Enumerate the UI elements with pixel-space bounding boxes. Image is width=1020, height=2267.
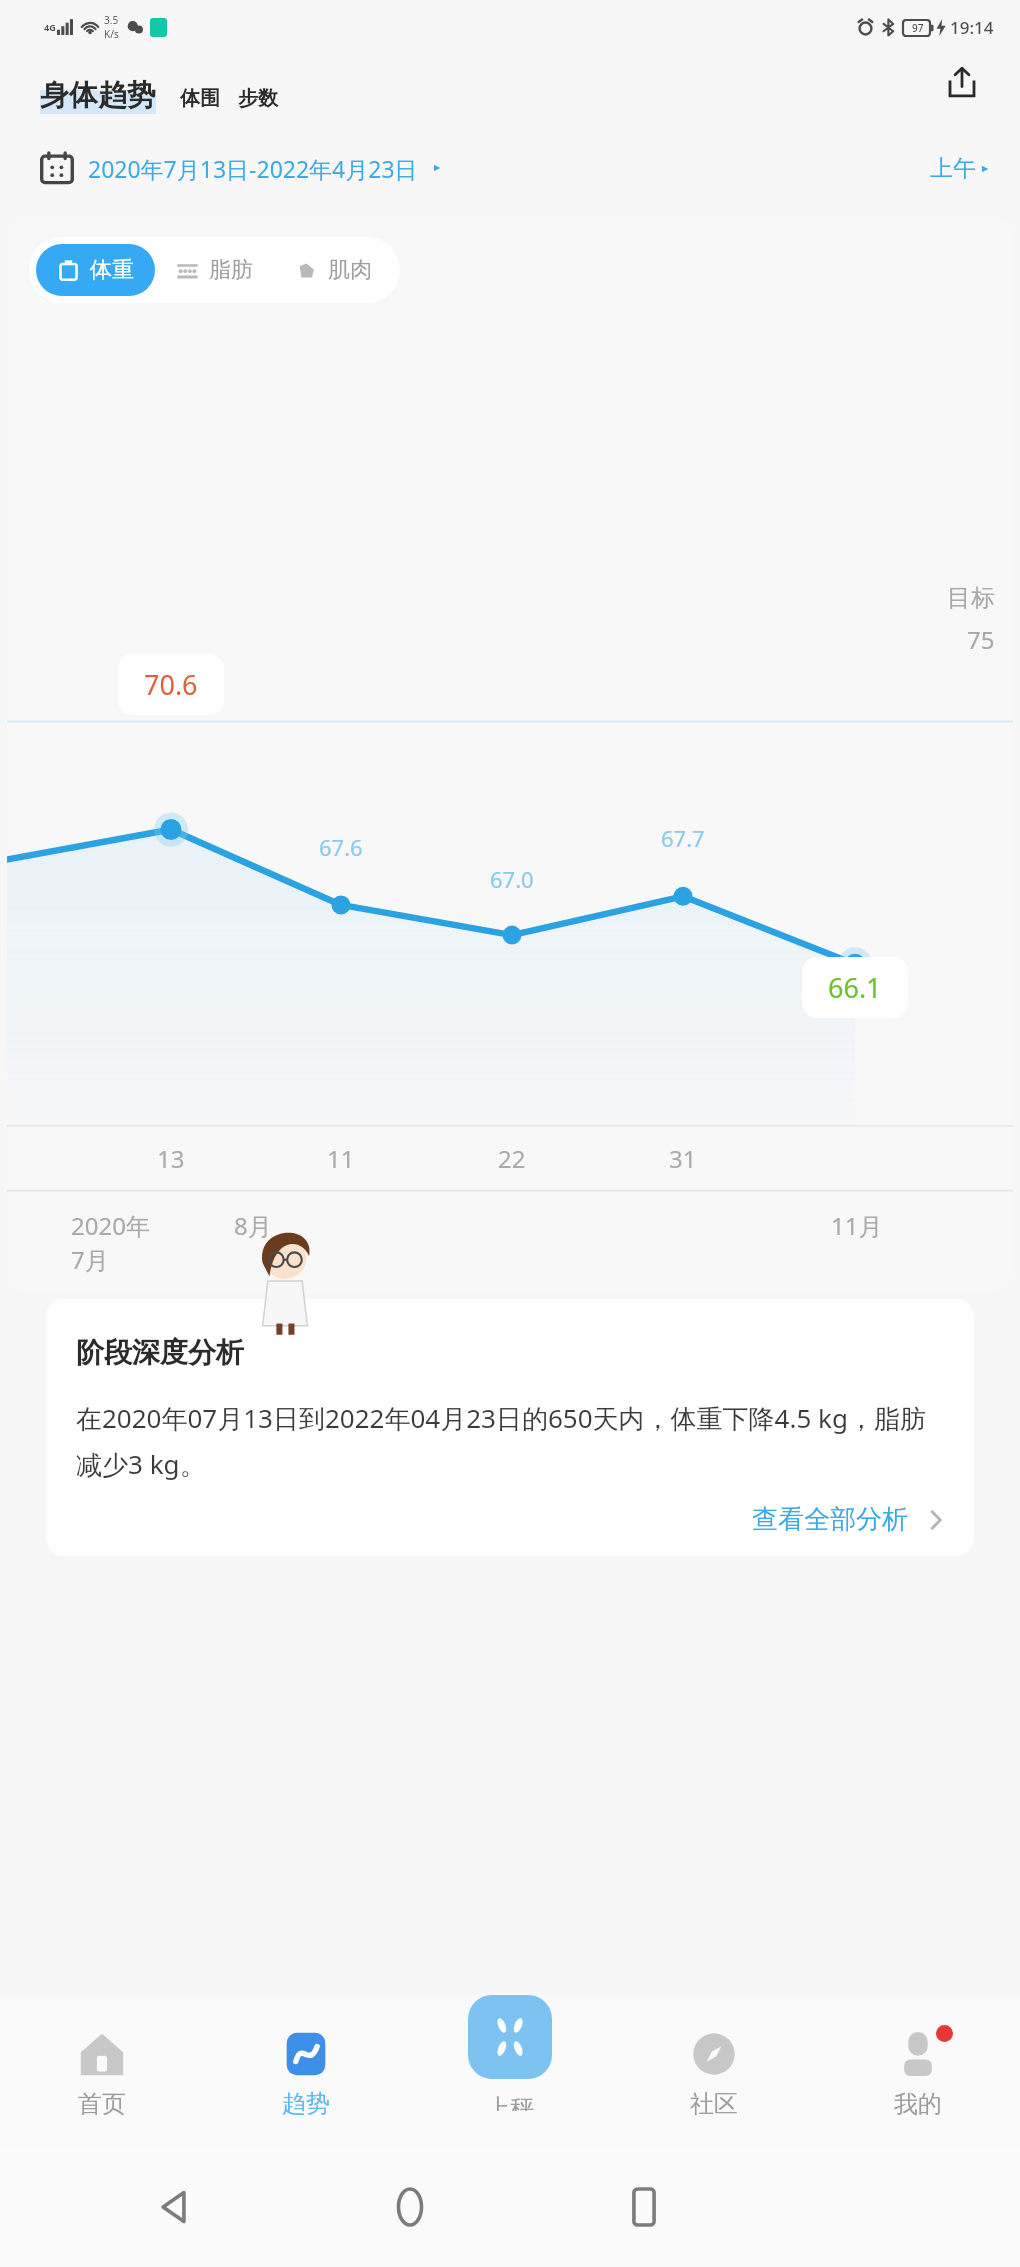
button[interactable]: 上午 [930,154,992,183]
staticText: 31 [669,1142,697,1175]
button[interactable]: Share [936,56,988,108]
staticText: 肌肉 [328,256,372,284]
staticText: 阶段深度分析 [76,1335,244,1370]
staticText: 67.6 [319,832,363,862]
staticText: 11月 [831,1209,883,1242]
button[interactable]: 脂肪 [155,244,274,296]
staticText: 3.5 [104,13,119,27]
button[interactable]: 体重 [36,244,155,296]
staticText: 67.7 [661,823,705,853]
button[interactable]: Recents [608,2171,680,2243]
staticText: 社区 [690,2089,738,2119]
staticText: 11 [327,1142,355,1175]
button[interactable]: 身体趋势 [40,77,156,114]
staticText: K/s [104,27,119,41]
button[interactable]: 步数 [238,86,278,114]
button[interactable]: 趋势 [204,2031,408,2119]
staticText: 75 [967,623,995,656]
button[interactable]: 首页 [0,2031,204,2119]
button[interactable]: 阶段深度分析 [46,1299,974,1556]
staticText: 脂肪 [209,256,253,284]
button[interactable]: 2020年7月13日-2022年4月23日 [40,151,444,185]
staticText: 19:14 [950,16,994,39]
staticText: 趋势 [282,2089,330,2119]
staticText: 身体趋势 [40,77,156,114]
staticText: 首页 [78,2089,126,2119]
staticText: 22 [498,1142,526,1175]
staticText: 查看全部分析 [752,1503,908,1536]
staticText: 上秤 [486,2093,534,2111]
staticText: 上午 [930,154,976,183]
staticText: 2020年7月 [71,1209,151,1276]
staticText: 70.6 [144,666,198,703]
button[interactable]: Back [140,2171,212,2243]
staticText: 目标 [947,583,995,613]
staticText: 在2020年07月13日到2022年04月23日的650天内，体重下降4.5 k… [76,1400,948,1481]
staticText: 8月 [234,1209,272,1242]
staticText: 13 [157,1142,185,1175]
staticText: 体重 [90,256,134,284]
staticText: 我的 [894,2089,942,2119]
staticText: 97 [912,21,924,35]
button[interactable]: 我的 [816,2031,1020,2119]
staticText: 4G [44,21,56,33]
button[interactable]: 上秤 [468,1995,552,2111]
staticText: 66.1 [828,969,882,1006]
staticText: 2020年7月13日-2022年4月23日 [88,153,418,184]
button[interactable]: 肌肉 [274,244,393,296]
button[interactable]: Home [374,2171,446,2243]
staticText: 67.0 [490,864,534,894]
button[interactable]: 社区 [612,2031,816,2119]
button[interactable]: 查看全部分析 [752,1503,948,1536]
button[interactable]: 体围 [180,86,220,114]
